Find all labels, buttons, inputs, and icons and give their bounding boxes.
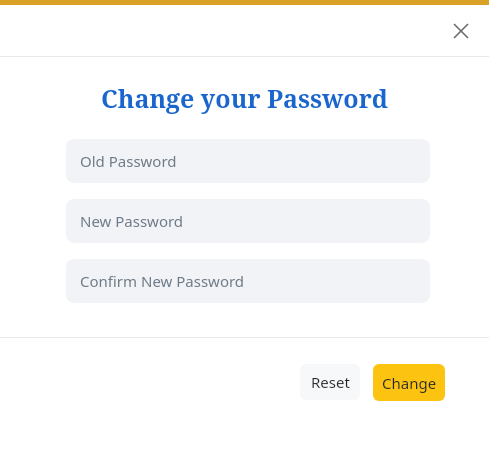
staticText: Reset xyxy=(311,372,350,392)
staticText: Confirm New Password xyxy=(80,271,245,291)
button[interactable]: Confirm New Password xyxy=(66,259,430,303)
button[interactable]: New Password xyxy=(66,199,430,243)
button[interactable]: Change xyxy=(373,364,445,401)
staticText: Change your Password xyxy=(0,81,489,115)
staticText: Old Password xyxy=(80,151,177,171)
staticText: Change xyxy=(382,373,437,393)
staticText: New Password xyxy=(80,211,184,231)
button[interactable]: Old Password xyxy=(66,139,430,183)
button[interactable]: Reset xyxy=(300,364,360,400)
button[interactable]: Close xyxy=(441,11,481,51)
